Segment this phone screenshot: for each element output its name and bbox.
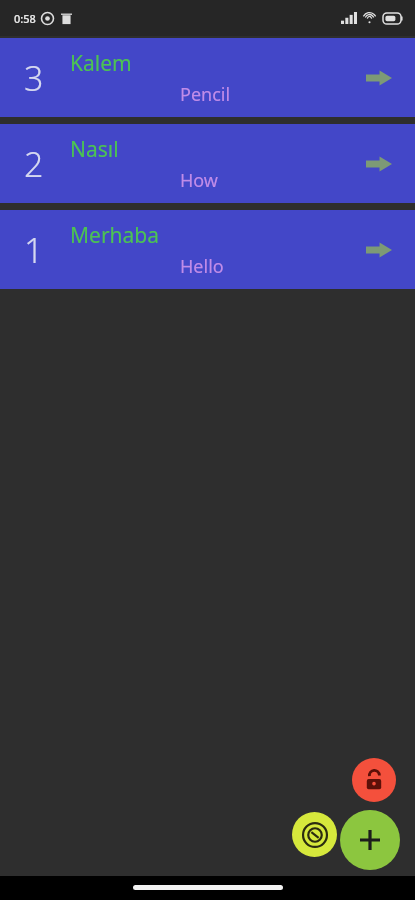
- staticText: Merhaba: [70, 221, 160, 250]
- button[interactable]: 1: [0, 210, 415, 289]
- staticText: 1: [24, 227, 44, 273]
- button[interactable]: Unlock: [352, 758, 396, 802]
- staticText: Nasıl: [70, 135, 119, 164]
- staticText: Hello: [180, 254, 224, 279]
- button[interactable]: 2: [0, 124, 415, 203]
- staticText: How: [180, 168, 219, 193]
- staticText: Pencil: [180, 82, 231, 107]
- button[interactable]: Add word: [340, 810, 400, 870]
- staticText: 2: [24, 141, 44, 187]
- staticText: 0:58: [14, 11, 36, 26]
- button[interactable]: Swap languages: [292, 812, 337, 857]
- staticText: Kalem: [70, 49, 132, 78]
- staticText: 3: [24, 55, 44, 101]
- button[interactable]: 3: [0, 38, 415, 117]
